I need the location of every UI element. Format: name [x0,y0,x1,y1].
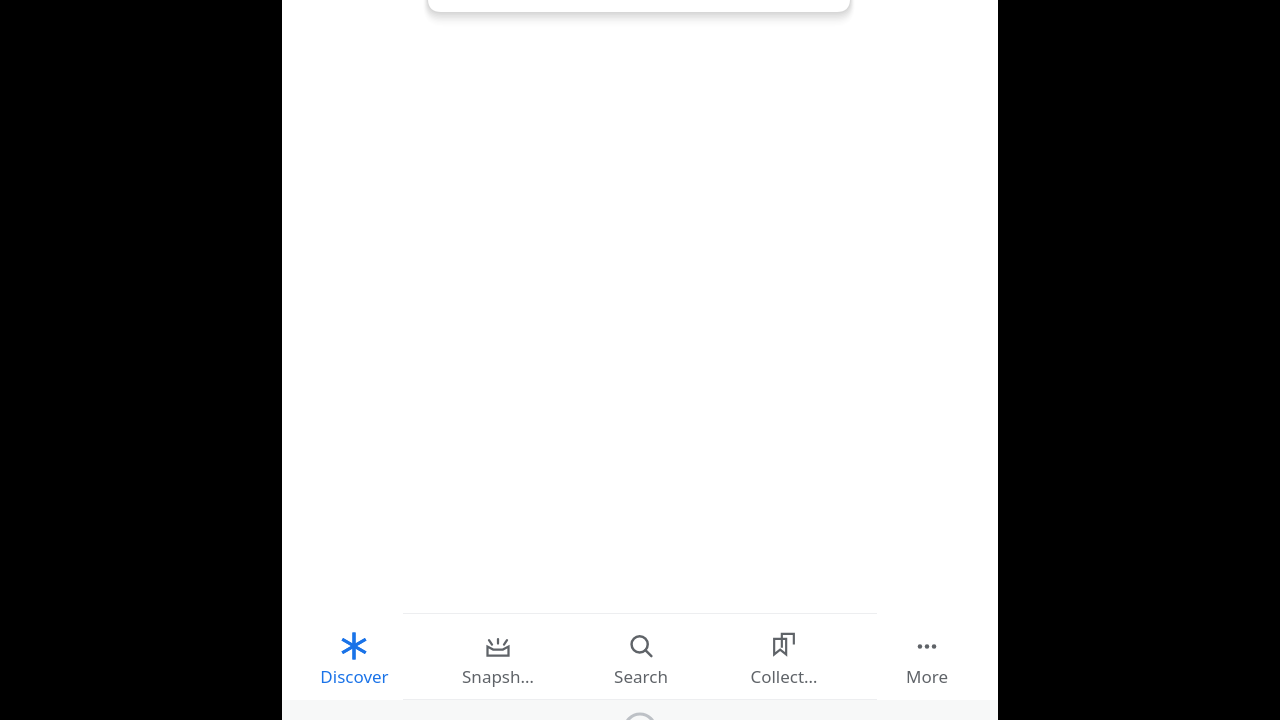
staticText: Discover [320,665,389,688]
button[interactable]: Discover [282,613,426,699]
button[interactable]: Collections [712,613,855,699]
staticText: Collect… [750,665,818,688]
staticText: More [906,665,948,688]
button[interactable]: Search [569,613,712,699]
staticText: Search [614,665,668,688]
button[interactable]: More [855,613,998,699]
button[interactable]: Snapshot [426,613,569,699]
staticText: Snapsh… [462,665,534,688]
